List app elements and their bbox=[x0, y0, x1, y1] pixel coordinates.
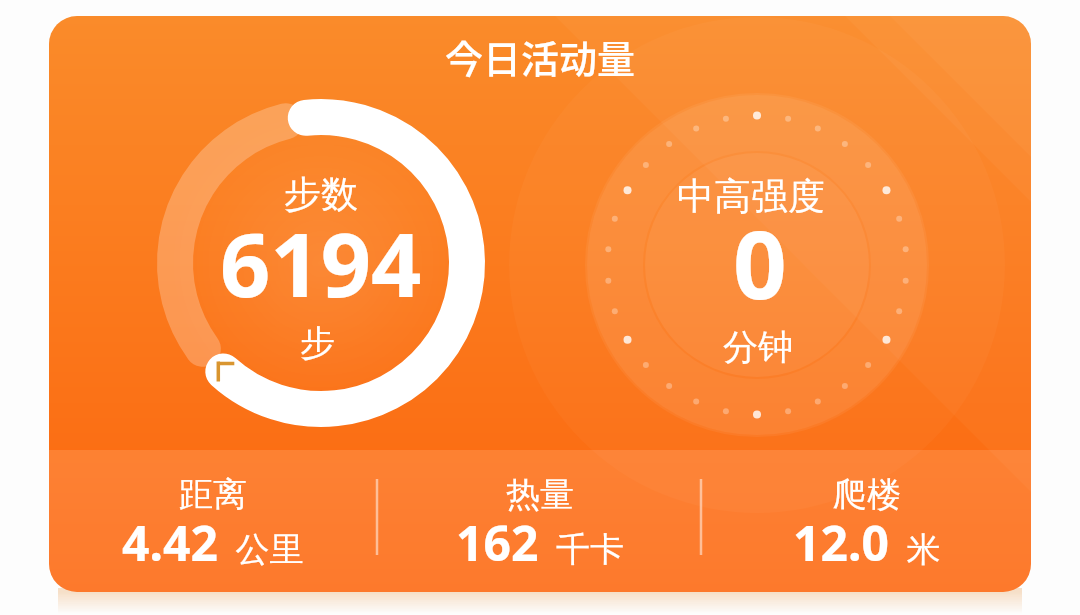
staticText: 分钟 bbox=[723, 325, 793, 369]
staticText: 6194 bbox=[220, 203, 422, 323]
staticText: 162 千卡 bbox=[456, 510, 625, 575]
staticText: 0 bbox=[733, 199, 787, 327]
staticText: 步数 bbox=[284, 171, 358, 218]
staticText: 今日活动量 bbox=[445, 29, 636, 84]
staticText: 爬楼 bbox=[833, 473, 901, 516]
staticText: 距离 bbox=[179, 473, 247, 516]
staticText: 热量 bbox=[506, 473, 574, 516]
button[interactable] bbox=[376, 450, 701, 592]
staticText: 步 bbox=[300, 321, 335, 365]
staticText: 中高强度 bbox=[677, 173, 825, 220]
button[interactable] bbox=[593, 101, 921, 429]
button[interactable] bbox=[157, 99, 485, 427]
staticText: 12.0 米 bbox=[793, 510, 941, 575]
button[interactable]: 今日活动量 bbox=[49, 16, 1031, 592]
button[interactable] bbox=[49, 450, 376, 592]
button[interactable] bbox=[701, 450, 1031, 592]
staticText: 4.42 公里 bbox=[122, 510, 304, 575]
